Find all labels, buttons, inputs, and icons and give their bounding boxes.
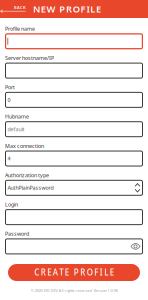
staticText: Server hostname/IP [5,54,54,61]
staticText: CREATE PROFILE [34,267,114,278]
button[interactable] [5,209,143,225]
staticText: BACK [14,5,26,10]
button[interactable]: 4 [5,150,143,166]
staticText: NEW PROFILE [33,3,101,15]
staticText: Authorization type [5,172,49,179]
staticText: © 2026 EXCDEV All rights reserved Versio… [30,288,117,293]
button[interactable]: default [5,121,143,137]
staticText: Profile name [5,25,35,32]
staticText: Port [5,84,15,91]
button[interactable]: Back [0,0,30,18]
staticText: Password [5,230,29,237]
staticText: Hubname [5,113,29,120]
staticText: Max connection [5,142,44,149]
button[interactable] [5,63,143,79]
button[interactable]: CREATE PROFILE [8,264,140,281]
staticText: default [7,126,24,133]
button[interactable] [5,33,143,49]
staticText: 4 [7,155,10,162]
button[interactable]: AuthPlainPassword [5,180,143,196]
button[interactable]: 0 [5,92,143,108]
staticText: AuthPlainPassword [7,184,53,191]
staticText: 0 [7,96,10,103]
button[interactable] [5,238,143,254]
staticText: Login [5,201,18,208]
